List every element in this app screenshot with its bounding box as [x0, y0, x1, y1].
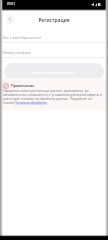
button[interactable]: Оформляя заказ при помощи данного прилож…	[3, 89, 102, 105]
staticText: Номер телефона	[3, 50, 31, 55]
staticText: Как к вам обращаться?	[3, 35, 41, 40]
button[interactable]: Зарегистрироваться	[4, 63, 104, 80]
staticText: Зарегистрироваться	[32, 69, 76, 75]
button[interactable]: Как к вам обращаться?	[0, 32, 108, 43]
button[interactable]: Номер телефона	[0, 47, 108, 58]
staticText: Регистрация	[0, 17, 108, 24]
staticText: Примечание	[11, 83, 35, 88]
button[interactable]: Back	[5, 14, 15, 24]
staticText: 09:51	[7, 2, 16, 6]
